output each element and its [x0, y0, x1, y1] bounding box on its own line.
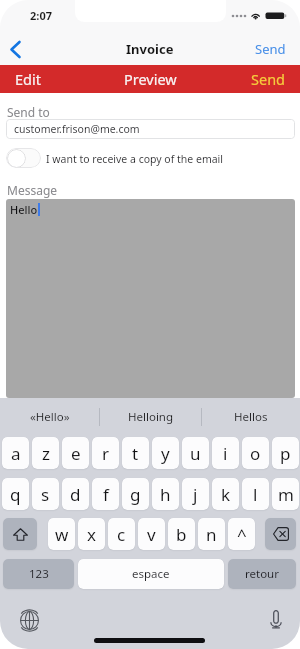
staticText: p [280, 442, 291, 465]
button[interactable]: o [242, 437, 269, 469]
staticText: b [176, 523, 187, 546]
button[interactable]: n [198, 518, 225, 550]
button[interactable]: i [212, 437, 239, 469]
staticText: ^ [237, 523, 247, 546]
staticText: Helloing [128, 409, 174, 425]
button[interactable]: f [92, 478, 119, 510]
staticText: Hellos [234, 409, 268, 425]
button[interactable]: customer.frison@me.com [6, 119, 295, 139]
button[interactable]: Change keyboard [16, 607, 42, 633]
button[interactable]: w [48, 518, 75, 550]
button[interactable]: ^ [228, 518, 255, 550]
staticText: 123 [29, 566, 49, 582]
staticText: v [147, 523, 156, 546]
button[interactable]: q [2, 478, 29, 510]
staticText: retour [245, 566, 279, 582]
button[interactable]: g [122, 478, 149, 510]
staticText: Message [7, 182, 58, 198]
button[interactable]: Dictate [263, 606, 289, 632]
staticText: g [130, 483, 141, 506]
button[interactable]: Send [255, 33, 300, 65]
button[interactable]: m [272, 478, 299, 510]
staticText: 2:07 [30, 8, 52, 23]
staticText: d [70, 483, 81, 506]
staticText: r [102, 442, 110, 465]
button[interactable]: Shift [3, 518, 37, 550]
button[interactable]: I want to receive a copy of the email [6, 148, 41, 168]
button[interactable]: p [272, 437, 299, 469]
button[interactable]: c [108, 518, 135, 550]
button[interactable]: a [2, 437, 29, 469]
staticText: Send to [7, 104, 50, 120]
staticText: customer.frison@me.com [14, 122, 140, 136]
staticText: c [117, 523, 126, 546]
button[interactable]: Hellos [202, 398, 300, 435]
staticText: s [41, 483, 50, 506]
staticText: i [223, 442, 228, 465]
staticText: z [42, 442, 50, 465]
staticText: f [103, 483, 109, 506]
staticText: j [193, 483, 198, 506]
button[interactable]: j [182, 478, 209, 510]
button[interactable]: z [32, 437, 59, 469]
button[interactable]: Helloing [100, 398, 201, 435]
button[interactable]: u [182, 437, 209, 469]
staticText: n [206, 523, 217, 546]
staticText: Preview [124, 69, 177, 89]
staticText: l [253, 483, 258, 506]
button[interactable]: s [32, 478, 59, 510]
button[interactable]: Hello [6, 199, 295, 398]
button[interactable]: espace [78, 559, 224, 589]
button[interactable]: t [122, 437, 149, 469]
staticText: Hello [10, 202, 38, 217]
staticText: I want to receive a copy of the email [46, 152, 224, 166]
button[interactable]: 123 [3, 559, 74, 589]
button[interactable]: y [152, 437, 179, 469]
staticText: o [250, 442, 261, 465]
button[interactable]: d [62, 478, 89, 510]
staticText: y [161, 442, 170, 465]
staticText: e [71, 442, 81, 465]
button[interactable]: v [138, 518, 165, 550]
staticText: espace [132, 566, 170, 582]
staticText: m [278, 483, 294, 506]
button[interactable]: k [212, 478, 239, 510]
staticText: x [87, 523, 96, 546]
staticText: Send [255, 40, 286, 58]
staticText: t [132, 442, 139, 465]
button[interactable]: Back [0, 33, 30, 65]
button[interactable]: l [242, 478, 269, 510]
button[interactable]: h [152, 478, 179, 510]
button[interactable]: Send [251, 65, 300, 93]
staticText: h [160, 483, 171, 506]
staticText: w [55, 523, 69, 546]
button[interactable]: e [62, 437, 89, 469]
staticText: «Hello» [30, 409, 70, 425]
button[interactable]: «Hello» [0, 398, 99, 435]
staticText: u [190, 442, 201, 465]
button[interactable]: Delete [265, 518, 296, 550]
staticText: Edit [15, 69, 41, 89]
button[interactable]: retour [228, 559, 296, 589]
button[interactable]: b [168, 518, 195, 550]
staticText: Send [251, 69, 286, 89]
staticText: a [11, 442, 21, 465]
button[interactable]: x [78, 518, 105, 550]
button[interactable]: Edit [0, 65, 41, 93]
staticText: q [10, 483, 21, 506]
button[interactable]: r [92, 437, 119, 469]
staticText: Invoice [126, 40, 174, 58]
staticText: k [221, 483, 231, 506]
